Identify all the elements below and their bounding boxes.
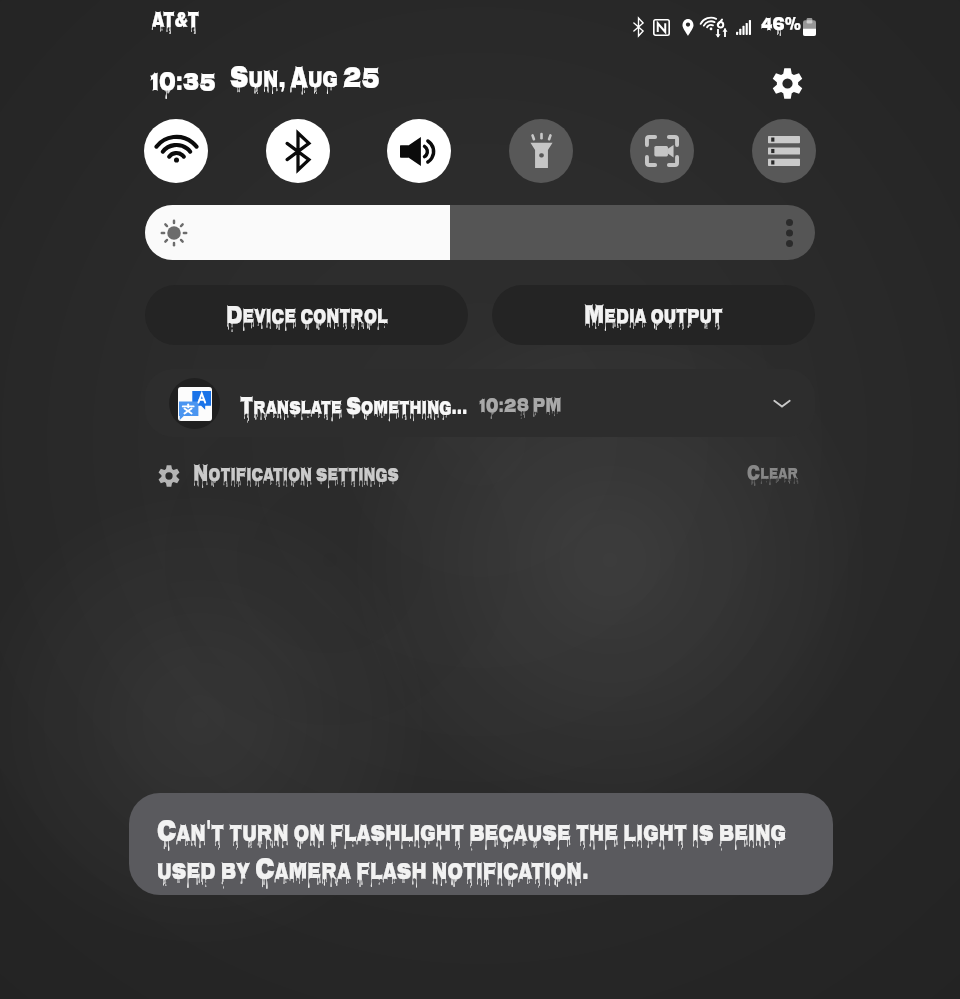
staticText: TRANSLATE SOMETHING... (240, 387, 468, 430)
staticText: CAN'T TURN ON FLASHLIGHT BECAUSE THE LIG… (157, 807, 822, 895)
button[interactable]: CLEAR (747, 459, 798, 493)
button[interactable]: DEVICE CONTROL (145, 285, 468, 345)
button[interactable]: Wi-Fi (144, 119, 208, 183)
button[interactable]: MEDIA OUTPUT (492, 285, 815, 345)
button[interactable]: TRANSLATE SOMETHING... (145, 369, 815, 437)
button[interactable]: Bluetooth (266, 119, 330, 183)
staticText: CLEAR (747, 456, 798, 490)
staticText: 46% (761, 9, 801, 43)
button[interactable]: Screen recorder (630, 119, 694, 183)
staticText: DEVICE CONTROL (226, 295, 388, 340)
button[interactable]: NOTIFICATION SETTINGS (158, 459, 398, 493)
staticText: 10:35 (150, 62, 216, 107)
staticText: NOTIFICATION SETTINGS (193, 455, 399, 489)
button[interactable]: Flashlight (509, 119, 573, 183)
staticText: MEDIA OUTPUT (584, 295, 723, 340)
button[interactable]: Quick settings (752, 119, 816, 183)
button[interactable]: Sound (387, 119, 451, 183)
button[interactable]: Settings (768, 64, 806, 102)
staticText: AT&T (152, 3, 199, 41)
staticText: 10:28 PM (479, 389, 562, 425)
staticText: SUN, AUG 25 (230, 54, 380, 107)
button[interactable]: Brightness (145, 205, 815, 260)
